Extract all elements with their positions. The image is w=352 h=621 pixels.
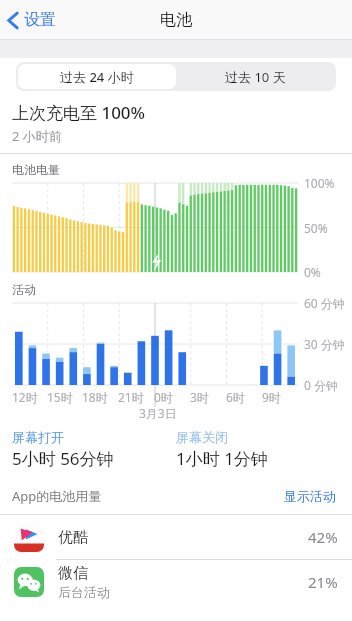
staticText: 42% xyxy=(308,527,338,547)
staticText: 2 小时前 xyxy=(12,127,62,145)
staticText: 50% xyxy=(304,220,328,236)
staticText: 后台活动 xyxy=(58,584,110,600)
staticText: App的电池用量 xyxy=(12,487,102,505)
staticText: 5小时 56分钟 xyxy=(12,447,114,470)
staticText: 3月3日 xyxy=(139,405,177,421)
staticText: 过去 24 小时 xyxy=(60,68,134,86)
staticText: 12时 xyxy=(12,389,38,405)
staticText: 60 分钟 xyxy=(304,295,345,311)
staticText: 15时 xyxy=(47,389,73,405)
staticText: 显示活动 xyxy=(284,488,336,504)
staticText: 上次充电至 100% xyxy=(12,101,146,124)
staticText: 微信 xyxy=(58,564,88,583)
staticText: 0时 xyxy=(154,389,173,405)
staticText: 21时 xyxy=(118,389,144,405)
staticText: 21% xyxy=(308,572,338,592)
staticText: 0 分钟 xyxy=(304,377,338,393)
staticText: 过去 10 天 xyxy=(225,68,286,86)
staticText: 优酷 xyxy=(58,528,88,547)
staticText: 电池 xyxy=(160,10,192,30)
staticText: 屏幕打开 xyxy=(12,429,64,445)
staticText: 设置 xyxy=(24,10,56,30)
staticText: 0% xyxy=(304,264,321,280)
staticText: 电池电量 xyxy=(12,162,60,177)
staticText: 18时 xyxy=(82,389,108,405)
staticText: 活动 xyxy=(12,282,36,297)
button[interactable]: 过去 10 天 xyxy=(176,64,334,89)
staticText: 1小时 1分钟 xyxy=(176,447,268,470)
staticText: 屏幕关闭 xyxy=(176,429,228,445)
staticText: 100% xyxy=(304,175,335,191)
staticText: 6时 xyxy=(226,389,245,405)
button[interactable]: 微信 xyxy=(0,560,352,604)
button[interactable]: Back to 设置 xyxy=(0,4,66,36)
button[interactable]: 优酷 xyxy=(0,515,352,559)
staticText: 3时 xyxy=(190,389,209,405)
staticText: 9时 xyxy=(262,389,281,405)
button[interactable]: 显示活动 xyxy=(280,484,340,508)
button[interactable]: 过去 24 小时 xyxy=(18,64,176,89)
staticText: 30 分钟 xyxy=(304,336,345,352)
